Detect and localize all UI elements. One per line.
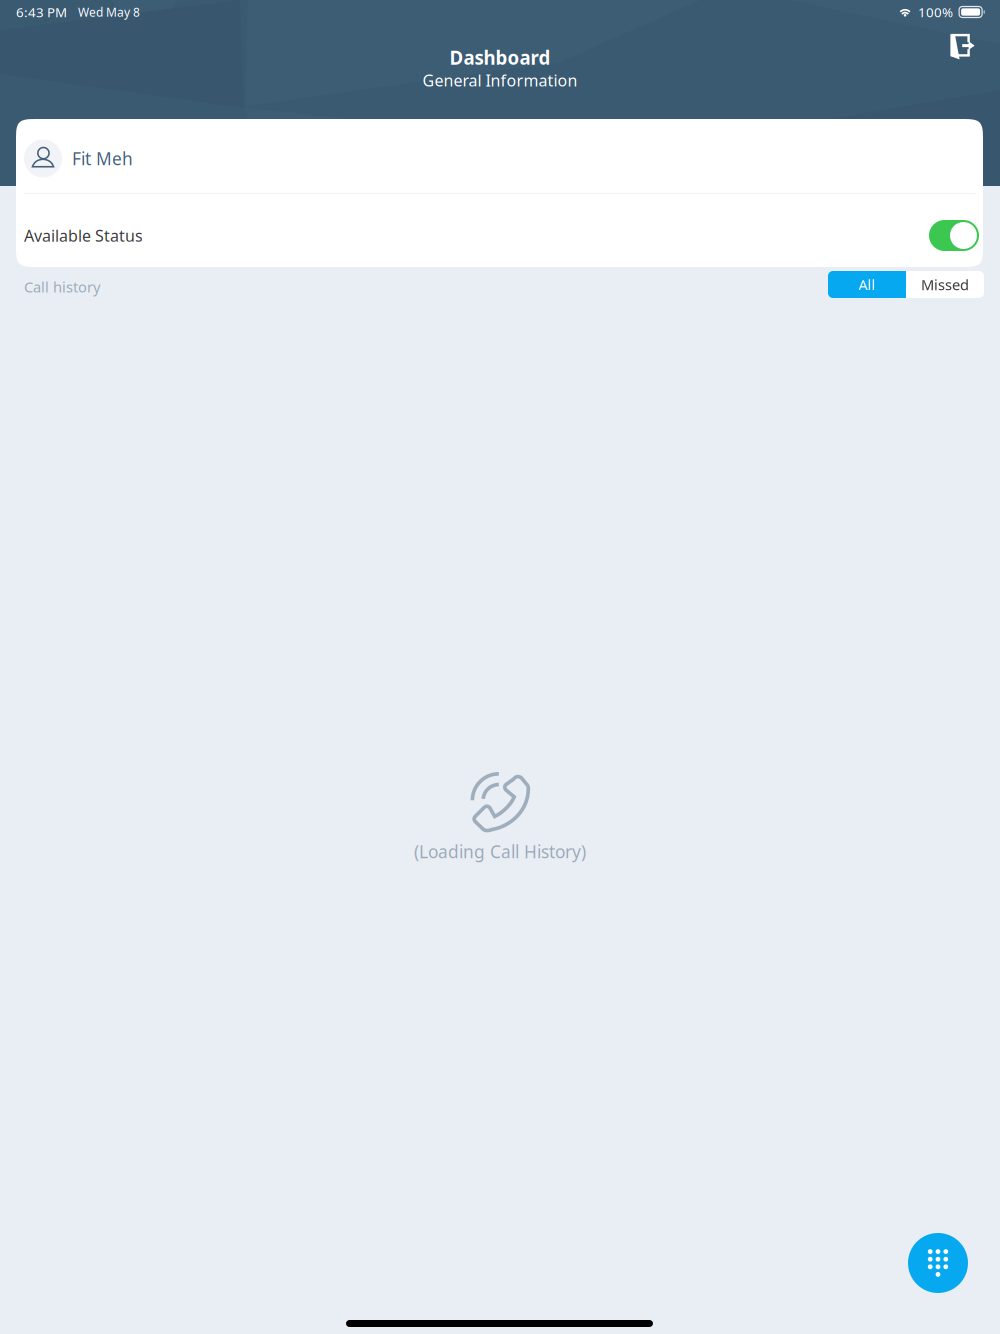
button[interactable]: All [828, 271, 906, 298]
staticText: Call history [24, 277, 100, 296]
staticText: General Information [422, 70, 577, 91]
button[interactable]: Dial pad [908, 1233, 968, 1293]
staticText: All [858, 275, 875, 294]
button[interactable]: Missed [906, 271, 984, 298]
staticText: Wed May 8 [78, 4, 140, 20]
staticText: (Loading Call History) [414, 840, 586, 863]
staticText: Fit Meh [72, 147, 133, 170]
staticText: Dashboard [449, 45, 550, 70]
button[interactable]: Log out [937, 20, 991, 74]
button[interactable]: Available Status toggle [929, 215, 979, 246]
button[interactable]: Fit Meh [16, 119, 983, 193]
staticText: 6:43 PM [16, 3, 67, 21]
staticText: Missed [921, 275, 969, 294]
staticText: Available Status [24, 225, 143, 246]
staticText: 100% [918, 3, 953, 21]
